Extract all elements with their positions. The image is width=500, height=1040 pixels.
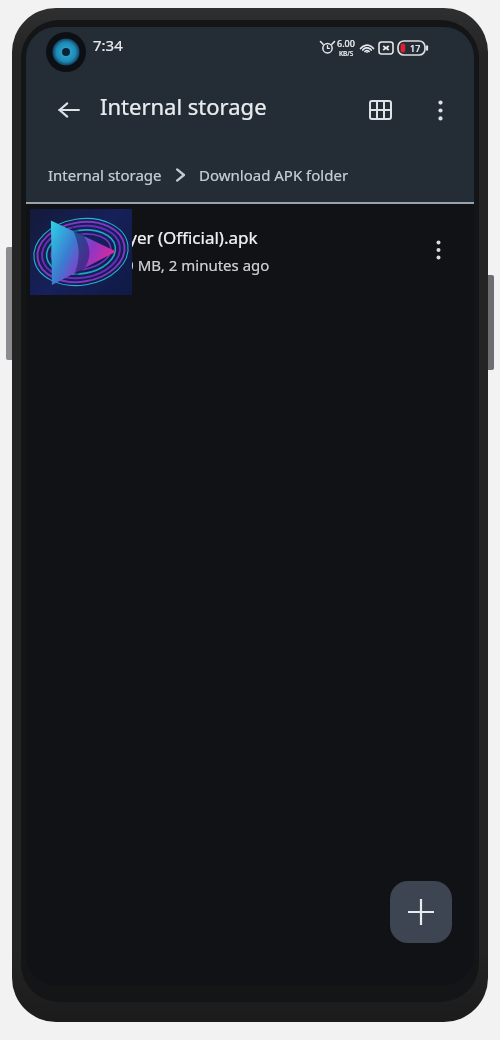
- button[interactable]: Back: [48, 89, 90, 131]
- staticText: 5.99 MB, 2 minutes ago: [104, 255, 270, 275]
- button[interactable]: Add: [390, 881, 452, 943]
- button[interactable]: File options: [416, 228, 460, 272]
- staticText: 6.00: [337, 37, 355, 49]
- staticText: 17: [410, 42, 421, 54]
- button[interactable]: More options: [418, 88, 462, 132]
- staticText: Internal storage: [48, 165, 162, 185]
- staticText: 7:34: [93, 35, 123, 55]
- staticText: Download APK folder: [199, 165, 349, 185]
- button[interactable]: Internal storage: [48, 165, 162, 185]
- staticText: KB/S: [339, 49, 354, 58]
- staticText: Player (Official).apk: [104, 226, 258, 249]
- button[interactable]: Grid view: [358, 88, 402, 132]
- button[interactable]: Download APK folder: [199, 165, 349, 185]
- button[interactable]: Player (Official).apk: [26, 204, 474, 296]
- staticText: Internal storage: [100, 91, 267, 121]
